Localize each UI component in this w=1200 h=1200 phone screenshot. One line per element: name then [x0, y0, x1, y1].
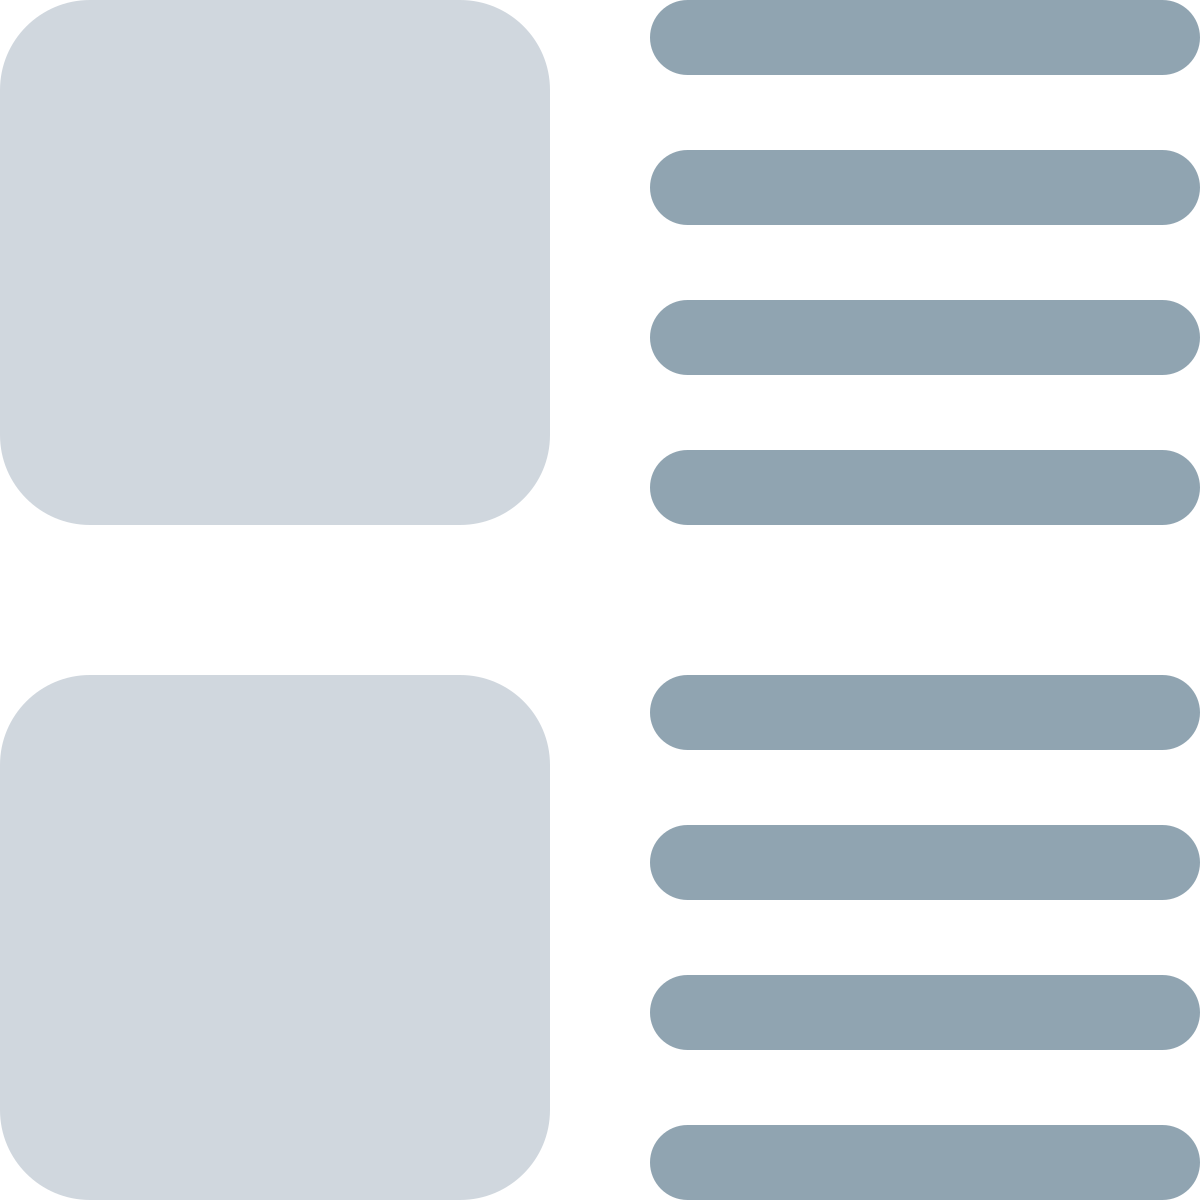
- button[interactable]: Loading item 1: [0, 0, 1200, 525]
- button[interactable]: Loading item 2: [0, 675, 1200, 1200]
